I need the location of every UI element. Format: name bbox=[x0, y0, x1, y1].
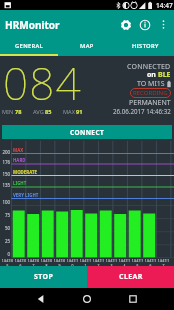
staticText: 25 bbox=[0, 238, 10, 244]
button[interactable]: Back bbox=[30, 288, 52, 310]
staticText: 14:47 bbox=[156, 1, 173, 10]
button[interactable]: Recents bbox=[122, 288, 144, 310]
staticText: 135 bbox=[0, 182, 10, 188]
staticText: CONNECTED bbox=[127, 62, 171, 72]
staticText: 0 bbox=[0, 251, 10, 257]
staticText: 084 bbox=[3, 53, 82, 113]
staticText: BLE bbox=[158, 70, 171, 80]
button[interactable]: Settings bbox=[118, 17, 134, 33]
staticText: 176 bbox=[0, 159, 10, 165]
staticText: VERY LIGHT bbox=[13, 192, 39, 198]
staticText: 14:47:10 bbox=[66, 258, 79, 268]
staticText: 14:47:07 bbox=[27, 258, 40, 268]
staticText: 100 bbox=[0, 199, 10, 205]
staticText: 14:47:14 bbox=[118, 258, 131, 268]
staticText: MODERATE bbox=[13, 169, 37, 175]
staticText: 50 bbox=[0, 225, 10, 231]
staticText: RECORDING bbox=[133, 89, 168, 97]
button[interactable]: GENERAL bbox=[0, 36, 58, 56]
button[interactable]: STOP bbox=[0, 266, 87, 288]
staticText: PERMANENT bbox=[129, 98, 171, 108]
staticText: 14:47:08 bbox=[40, 258, 53, 268]
staticText: MAX bbox=[13, 147, 24, 153]
staticText: 150 bbox=[0, 171, 10, 177]
staticText: 91 bbox=[76, 108, 83, 116]
staticText: CONNECT bbox=[70, 128, 105, 137]
staticText: AVG bbox=[33, 108, 44, 116]
button[interactable]: HISTORY bbox=[116, 36, 174, 56]
button[interactable]: CLEAR bbox=[87, 266, 174, 288]
staticText: HISTORY bbox=[132, 42, 159, 50]
staticText: 14:47:16 bbox=[144, 258, 157, 268]
staticText: 75 bbox=[0, 212, 10, 218]
staticText: 200 bbox=[0, 149, 10, 155]
staticText: STOP bbox=[34, 272, 54, 282]
button[interactable]: MAP bbox=[58, 36, 116, 56]
staticText: on bbox=[147, 70, 158, 80]
staticText: MIN bbox=[2, 108, 14, 116]
staticText: 85 bbox=[45, 108, 52, 116]
staticText: 14:47:17 bbox=[157, 258, 170, 268]
staticText: 14:47:15 bbox=[131, 258, 144, 268]
staticText: 14:47:13 bbox=[105, 258, 118, 268]
staticText: 14:47:12 bbox=[92, 258, 105, 268]
staticText: 14:47:06 bbox=[14, 258, 27, 268]
staticText: CLEAR bbox=[119, 272, 143, 282]
staticText: 14:47:05 bbox=[1, 258, 14, 268]
staticText: 14:47:11 bbox=[79, 258, 92, 268]
button[interactable]: More options bbox=[157, 18, 170, 31]
staticText: GENERAL bbox=[15, 42, 44, 50]
button[interactable]: CONNECT bbox=[2, 125, 172, 139]
staticText: 26.06.2017 14:46:32 bbox=[113, 107, 171, 115]
staticText: 14:47:09 bbox=[53, 258, 66, 268]
staticText: TO MI1S bbox=[137, 79, 165, 89]
staticText: LIGHT bbox=[13, 180, 27, 186]
staticText: MAP bbox=[80, 42, 94, 50]
button[interactable]: Info bbox=[137, 17, 153, 33]
staticText: HARD bbox=[13, 157, 26, 163]
button[interactable]: Home bbox=[76, 288, 98, 310]
staticText: HRMonitor bbox=[5, 18, 60, 32]
staticText: MAX bbox=[63, 108, 75, 116]
staticText: 78 bbox=[15, 108, 22, 116]
